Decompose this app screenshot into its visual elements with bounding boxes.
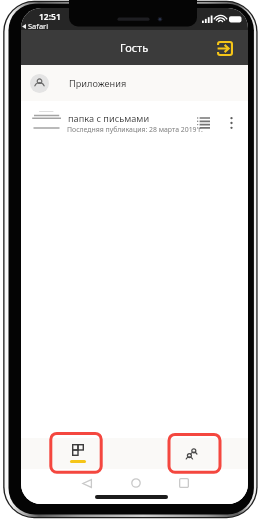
- button[interactable]: Приложения: [21, 65, 248, 101]
- button[interactable]: People: [134, 438, 248, 469]
- staticText: Последняя публикация: 28 марта 2019 г.: [67, 125, 203, 134]
- staticText: Приложения: [69, 77, 127, 90]
- staticText: Safari: [28, 21, 49, 31]
- staticText: папка с письмами: [68, 112, 150, 125]
- button[interactable]: Home: [122, 469, 150, 497]
- button[interactable]: Back: [73, 469, 101, 497]
- button[interactable]: папка с письмами: [21, 101, 248, 140]
- staticText: 12:51: [39, 11, 61, 23]
- button[interactable]: Dashboard: [21, 438, 134, 469]
- button[interactable]: Sign in: [215, 38, 235, 58]
- button[interactable]: Recents: [170, 469, 198, 497]
- staticText: Гость: [120, 40, 149, 55]
- button[interactable]: More options: [217, 109, 245, 137]
- button[interactable]: View: [189, 109, 217, 137]
